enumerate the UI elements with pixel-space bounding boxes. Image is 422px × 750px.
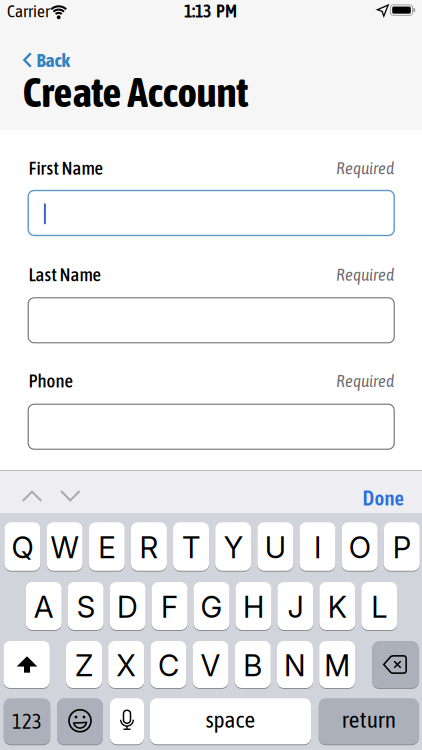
button[interactable]: T [173, 522, 209, 571]
button[interactable]: M [319, 641, 355, 688]
button[interactable]: U [257, 522, 293, 571]
button[interactable]: Previous field [15, 478, 49, 512]
button[interactable]: Emoji [57, 698, 103, 744]
staticText: First Name [28, 157, 102, 179]
button[interactable]: S [68, 582, 104, 630]
staticText: G [200, 589, 222, 625]
button[interactable]: V [193, 641, 229, 688]
button[interactable]: D [110, 582, 146, 630]
staticText: Required [336, 265, 394, 284]
staticText: M [324, 648, 350, 683]
staticText: Y [224, 530, 243, 565]
staticText: E [98, 530, 115, 565]
staticText: Z [75, 648, 93, 683]
staticText: X [116, 648, 136, 683]
button[interactable]: W [47, 522, 83, 571]
button[interactable]: A [26, 582, 62, 630]
textField[interactable]: Last Name [28, 307, 394, 334]
textField[interactable]: Phone [28, 413, 394, 440]
staticText: return [342, 706, 396, 733]
staticText: C [158, 648, 179, 683]
staticText: T [182, 530, 200, 565]
staticText: A [34, 589, 54, 625]
staticText: S [77, 589, 95, 625]
button[interactable]: Y [215, 522, 251, 571]
staticText: O [349, 530, 371, 565]
staticText: F [161, 589, 178, 625]
staticText: J [287, 589, 303, 625]
textField[interactable]: First Name [28, 200, 394, 226]
staticText: Back [36, 49, 70, 71]
staticText: B [243, 648, 262, 683]
button[interactable]: space [150, 698, 311, 744]
staticText: H [243, 589, 264, 625]
button[interactable]: F [152, 582, 188, 630]
staticText: Q [11, 530, 33, 565]
button[interactable]: Q [4, 522, 40, 571]
staticText: Required [336, 158, 394, 178]
button[interactable]: Delete [372, 641, 419, 688]
staticText: D [117, 589, 138, 625]
staticText: I [314, 530, 321, 565]
button[interactable]: J [277, 582, 313, 630]
staticText: L [371, 589, 387, 625]
staticText: Last Name [28, 264, 100, 285]
staticText: K [328, 589, 347, 625]
button[interactable]: E [89, 522, 125, 571]
button[interactable]: R [131, 522, 167, 571]
staticText: P [393, 530, 411, 565]
button[interactable]: L [361, 582, 397, 630]
staticText: N [284, 648, 306, 683]
button[interactable]: Back [23, 49, 70, 71]
staticText: Phone [28, 370, 72, 391]
staticText: R [139, 530, 158, 565]
button[interactable]: Shift [3, 641, 50, 688]
staticText: 123 [12, 709, 42, 733]
button[interactable]: return [319, 698, 419, 744]
button[interactable]: C [150, 641, 186, 688]
button[interactable]: P [384, 522, 420, 571]
button[interactable]: B [235, 641, 271, 688]
button[interactable]: O [342, 522, 378, 571]
staticText: Create Account [22, 68, 248, 116]
button[interactable]: H [235, 582, 271, 630]
staticText: W [51, 530, 79, 565]
button[interactable]: G [193, 582, 229, 630]
staticText: V [201, 648, 221, 683]
button[interactable]: Done [362, 486, 403, 510]
staticText: Carrier [7, 1, 50, 21]
button[interactable]: K [319, 582, 355, 630]
button[interactable]: Z [66, 641, 102, 688]
staticText: 1:13 PM [184, 1, 237, 21]
staticText: U [265, 530, 286, 565]
staticText: Required [336, 371, 394, 391]
button[interactable]: X [108, 641, 144, 688]
staticText: space [205, 706, 255, 733]
button[interactable]: 123 [4, 698, 50, 744]
button[interactable]: N [277, 641, 313, 688]
button[interactable]: Dictate [110, 698, 144, 744]
button[interactable]: Next field [53, 479, 87, 513]
button[interactable]: I [299, 522, 335, 571]
staticText: Done [362, 486, 403, 510]
